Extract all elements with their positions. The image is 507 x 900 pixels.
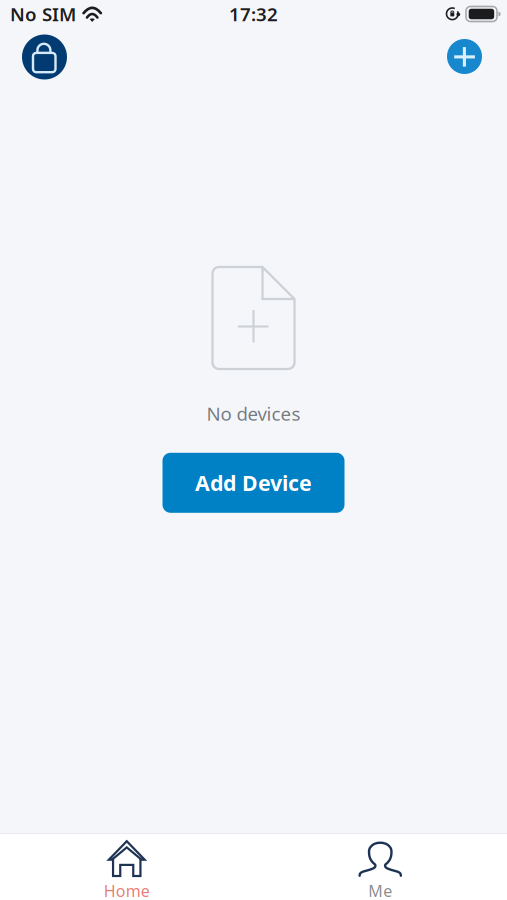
button[interactable]: Home: [0, 834, 253, 900]
button[interactable]: Add device: [436, 28, 492, 84]
staticText: Me: [368, 880, 392, 900]
staticText: No devices: [206, 401, 300, 426]
staticText: No SIM: [10, 2, 76, 26]
staticText: Add Device: [195, 469, 312, 497]
staticText: 17:32: [229, 2, 278, 26]
button[interactable]: Me: [253, 834, 507, 900]
button[interactable]: Lock: [16, 29, 72, 85]
button[interactable]: Add Device: [162, 453, 344, 513]
staticText: Home: [104, 880, 150, 900]
